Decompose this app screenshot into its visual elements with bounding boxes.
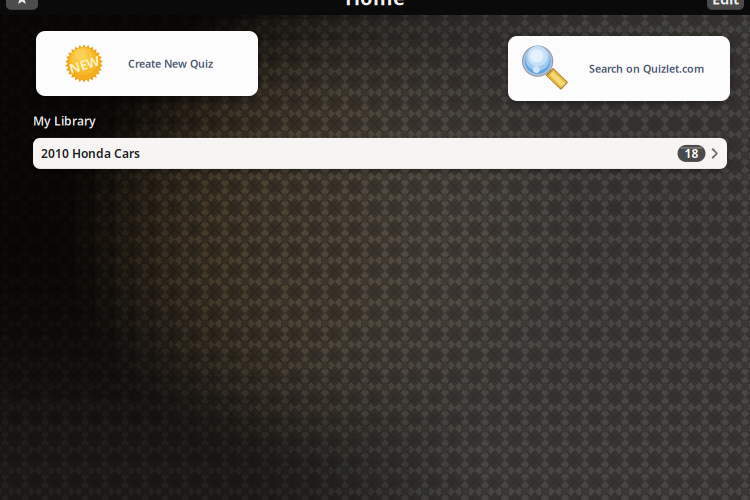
- button[interactable]: Favorites: [6, 0, 38, 10]
- staticText: 2010 Honda Cars: [41, 145, 140, 161]
- button[interactable]: Edit: [707, 0, 744, 10]
- staticText: 18: [684, 145, 698, 161]
- staticText: Search on Quizlet.com: [589, 61, 704, 76]
- button[interactable]: 2010 Honda Cars: [33, 138, 727, 169]
- staticText: My Library: [33, 113, 96, 129]
- staticText: Home: [345, 0, 405, 11]
- staticText: Edit: [712, 0, 739, 8]
- staticText: Create New Quiz: [128, 56, 213, 71]
- staticText: NEW: [69, 56, 100, 73]
- button[interactable]: Search on Quizlet.com: [508, 36, 730, 101]
- button[interactable]: NEW: [36, 31, 258, 96]
